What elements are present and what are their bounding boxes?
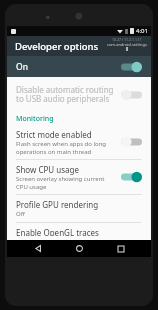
- staticText: On: [16, 61, 121, 73]
- staticText: Flash screen when apps do long operation…: [16, 140, 116, 155]
- staticText: Strict mode enabled: [16, 129, 92, 140]
- staticText: Screen overlay showing current CPU usage: [16, 175, 116, 190]
- staticText: Profile GPU rendering: [16, 199, 99, 210]
- button[interactable]: Recent apps: [110, 240, 132, 257]
- button[interactable]: On: [7, 56, 151, 77]
- staticText: Show CPU usage: [16, 164, 79, 175]
- staticText: Off: [16, 210, 25, 218]
- button[interactable]: Home: [68, 240, 90, 257]
- staticText: 10.27 / 11.2.1.1.11: [112, 37, 142, 42]
- staticText: Developer options: [15, 40, 99, 53]
- button[interactable]: Disable automatic routing to USB audio p…: [7, 80, 151, 109]
- staticText: com.android.settings: [107, 42, 147, 47]
- button[interactable]: Show CPU usage: [7, 160, 151, 194]
- staticText: Monitoring: [16, 114, 151, 124]
- button[interactable]: Strict mode enabled: [7, 125, 151, 159]
- button[interactable]: Profile GPU rendering: [7, 195, 151, 222]
- staticText: Enable OpenGL traces: [16, 227, 99, 236]
- button[interactable]: Back: [27, 240, 49, 257]
- button[interactable]: Enable OpenGL traces: [7, 223, 151, 240]
- staticText: Disable automatic routing to USB audio p…: [16, 84, 116, 105]
- staticText: 4:01: [136, 27, 148, 35]
